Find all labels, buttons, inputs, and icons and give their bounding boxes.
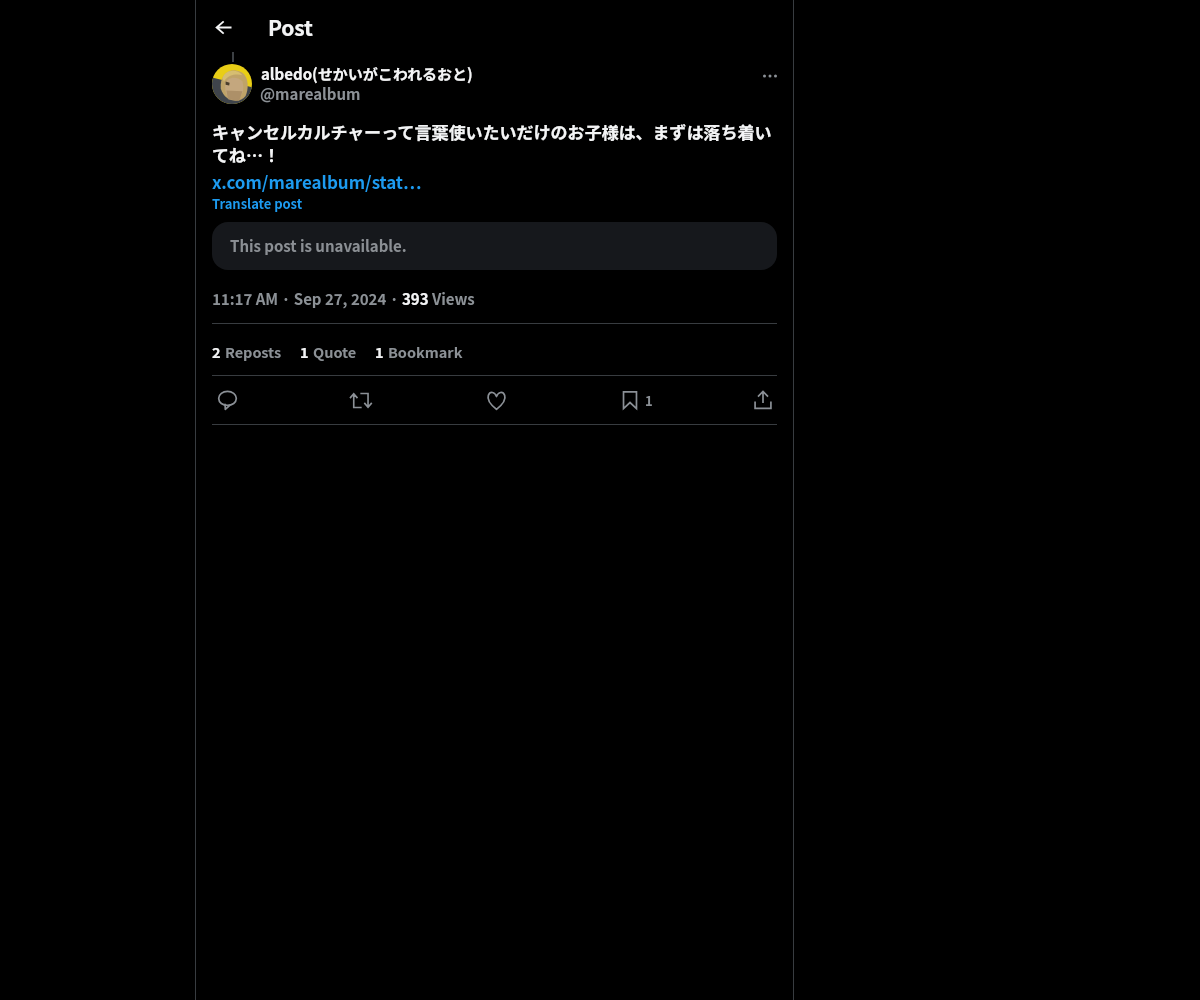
staticText: albedo(せかいがこわれるおと) [261,63,473,85]
staticText: x.com/marealbum/stat… [212,169,422,194]
staticText: Translate post [212,194,303,213]
button[interactable]: 1 [300,341,357,362]
button[interactable]: Reply [210,383,244,417]
staticText: @marealbum [260,83,361,105]
button[interactable]: This post is unavailable. [212,222,777,270]
staticText: 393 [402,288,432,310]
button[interactable]: Profile picture [212,64,252,104]
staticText: This post is unavailable. [230,235,407,257]
button[interactable]: Back [206,10,241,45]
button[interactable]: More options [754,60,786,92]
button[interactable]: Repost [344,383,378,417]
button[interactable]: Share [746,383,780,417]
staticText: キャンセルカルチャーって言葉使いたいだけのお子様は、まずは落ち着いてね…！ [212,119,777,167]
staticText: 1 [645,391,653,410]
staticText: Post [268,12,313,42]
staticText: 1 [300,341,309,362]
staticText: Bookmark [388,341,463,362]
staticText: 2 [212,341,221,362]
button[interactable]: 1 [613,383,661,417]
staticText: 11:17 AM · Sep 27, 2024 · [212,288,402,310]
button[interactable]: Translate post [212,194,303,213]
button[interactable]: x.com/marealbum/stat… [212,169,422,194]
staticText: Reposts [225,341,282,362]
staticText: 1 [375,341,384,362]
button[interactable]: Like [479,383,513,417]
staticText: Quote [313,341,357,362]
button[interactable]: 1 [375,341,463,362]
button[interactable]: 2 [212,341,282,362]
staticText: Views [432,288,475,310]
